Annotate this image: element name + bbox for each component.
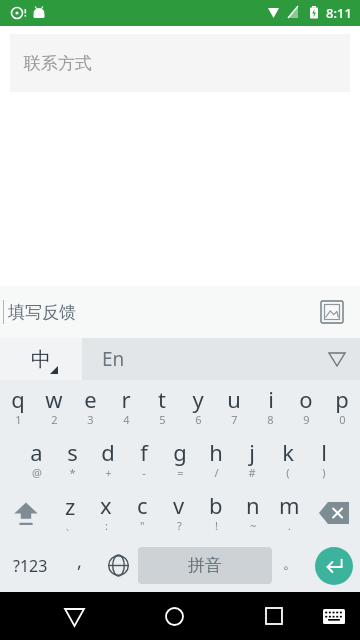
button[interactable]: s — [54, 433, 90, 486]
button[interactable]: 。 — [272, 539, 308, 592]
staticText: 中 — [31, 347, 51, 372]
staticText: 8 — [267, 412, 274, 427]
staticText: p — [335, 384, 349, 414]
staticText: r — [121, 384, 131, 414]
staticText: q — [11, 384, 25, 414]
button[interactable]: y — [180, 380, 216, 433]
button[interactable]: Backspace — [308, 486, 360, 539]
button[interactable]: Recents — [250, 592, 298, 640]
staticText: w — [45, 384, 63, 414]
staticText: / — [214, 465, 219, 480]
button[interactable]: j — [234, 433, 270, 486]
staticText: l — [321, 437, 327, 467]
staticText: ?123 — [13, 555, 48, 577]
staticText: 0 — [339, 412, 346, 427]
staticText: m — [279, 490, 300, 520]
button[interactable]: x — [88, 486, 124, 539]
staticText: 6 — [195, 412, 202, 427]
button[interactable]: n — [234, 486, 271, 539]
button[interactable]: q — [0, 380, 36, 433]
staticText: 7 — [231, 412, 238, 427]
staticText: 5 — [159, 412, 166, 427]
button[interactable]: e — [72, 380, 108, 433]
staticText: d — [101, 437, 115, 467]
button[interactable]: , — [60, 539, 98, 592]
staticText: 2 — [51, 412, 58, 427]
button[interactable]: ?123 — [0, 539, 60, 592]
staticText: , — [77, 549, 82, 574]
staticText: = — [177, 465, 184, 480]
button[interactable]: Change language — [98, 539, 138, 592]
button[interactable]: En — [82, 338, 314, 380]
button[interactable]: i — [252, 380, 288, 433]
button[interactable]: Back — [50, 592, 98, 640]
staticText: y — [192, 384, 204, 414]
staticText: 。 — [283, 555, 297, 573]
staticText: i — [268, 384, 274, 414]
button[interactable]: 中 — [0, 338, 82, 380]
staticText: j — [249, 437, 255, 467]
button[interactable]: Home — [150, 592, 198, 640]
staticText: k — [282, 437, 294, 467]
button[interactable]: m — [271, 486, 308, 539]
button[interactable]: Shift — [0, 486, 52, 539]
staticText: ~ — [250, 518, 257, 533]
staticText: 填写反馈 — [8, 302, 76, 323]
staticText: 1 — [15, 412, 22, 427]
button[interactable]: 联系方式 — [10, 34, 350, 92]
staticText: 4 — [123, 412, 130, 427]
button[interactable]: c — [124, 486, 160, 539]
button[interactable]: w — [36, 380, 72, 433]
staticText: + — [105, 465, 112, 480]
staticText: x — [100, 490, 112, 520]
button[interactable]: z — [52, 486, 88, 539]
staticText: 9 — [303, 412, 310, 427]
button[interactable]: p — [324, 380, 360, 433]
staticText: # — [248, 465, 256, 480]
button[interactable]: Insert image — [316, 296, 348, 328]
staticText: 拼音 — [188, 555, 222, 576]
staticText: z — [65, 491, 76, 521]
staticText: ? — [177, 518, 182, 533]
button[interactable]: v — [160, 486, 197, 539]
button[interactable]: r — [108, 380, 144, 433]
staticText: En — [102, 346, 125, 372]
staticText: 3 — [87, 412, 94, 427]
staticText: g — [173, 437, 187, 467]
button[interactable]: b — [197, 486, 234, 539]
staticText: c — [137, 490, 148, 520]
button[interactable]: a — [18, 433, 54, 486]
button[interactable]: Switch keyboard — [312, 594, 356, 638]
button[interactable]: l — [306, 433, 342, 486]
staticText: f — [140, 437, 148, 467]
button[interactable]: Enter — [308, 539, 360, 592]
staticText: n — [246, 490, 260, 520]
staticText: o — [299, 384, 313, 414]
staticText: e — [84, 384, 97, 414]
staticText: ! — [215, 518, 218, 533]
button[interactable]: o — [288, 380, 324, 433]
staticText: - — [142, 465, 146, 480]
button[interactable]: 拼音 — [138, 547, 272, 584]
staticText: h — [209, 437, 223, 467]
button[interactable]: u — [216, 380, 252, 433]
staticText: ) — [322, 465, 326, 480]
button[interactable]: g — [162, 433, 198, 486]
button[interactable]: f — [126, 433, 162, 486]
staticText: ( — [286, 465, 290, 480]
button[interactable]: h — [198, 433, 234, 486]
staticText: u — [227, 384, 241, 414]
staticText: " — [140, 518, 145, 533]
staticText: * — [69, 465, 76, 480]
button[interactable]: k — [270, 433, 306, 486]
button[interactable]: Hide keyboard — [314, 338, 360, 380]
staticText: a — [30, 437, 43, 467]
staticText: 联系方式 — [24, 53, 92, 74]
staticText: s — [67, 437, 78, 467]
button[interactable]: t — [144, 380, 180, 433]
staticText: b — [209, 490, 223, 520]
staticText: . — [288, 518, 291, 533]
button[interactable]: d — [90, 433, 126, 486]
staticText: 8:11 — [326, 4, 352, 22]
staticText: v — [173, 490, 185, 520]
